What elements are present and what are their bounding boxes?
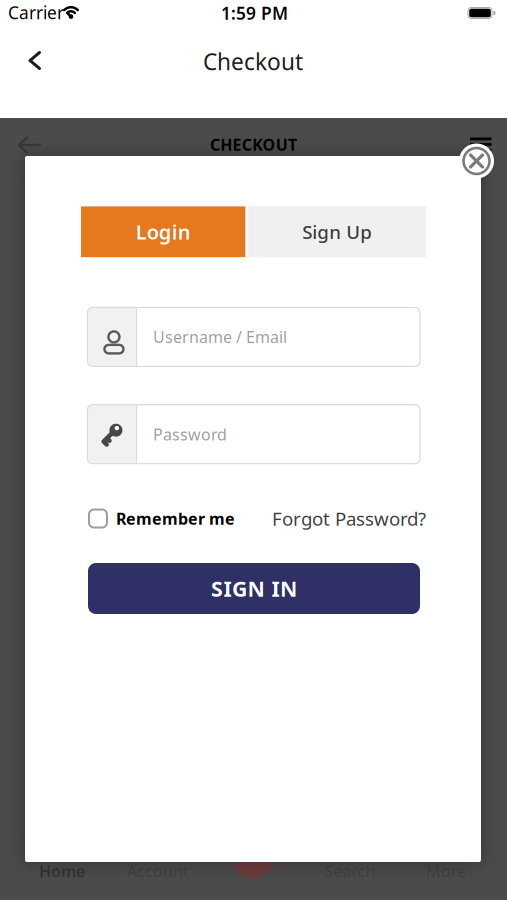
- staticText: Home: [39, 860, 85, 882]
- button[interactable]: Back: [18, 137, 41, 153]
- button[interactable]: Login: [81, 206, 245, 257]
- staticText: Remember me: [116, 508, 235, 529]
- staticText: Carrier: [8, 1, 64, 24]
- staticText: 1:59 PM: [221, 1, 288, 24]
- staticText: Search: [324, 860, 375, 882]
- button[interactable]: Cart: [231, 834, 275, 878]
- button[interactable]: Password: [87, 405, 420, 464]
- staticText: Login: [136, 218, 191, 245]
- button[interactable]: Remember me: [89, 508, 235, 529]
- staticText: Account: [127, 860, 189, 882]
- staticText: More: [426, 860, 466, 882]
- staticText: SIGN IN: [211, 574, 297, 603]
- staticText: CHECKOUT: [210, 134, 297, 155]
- staticText: Sign Up: [302, 219, 372, 244]
- staticText: Forgot Password?: [272, 506, 426, 531]
- button[interactable]: Menu: [470, 137, 491, 151]
- button[interactable]: Search: [324, 860, 375, 882]
- staticText: Username / Email: [153, 326, 287, 347]
- button[interactable]: Forgot Password?: [272, 506, 426, 531]
- button[interactable]: Back: [15, 40, 55, 80]
- button[interactable]: Close: [459, 143, 494, 178]
- staticText: Password: [153, 424, 227, 445]
- button[interactable]: SIGN IN: [88, 563, 420, 614]
- button[interactable]: Home: [39, 860, 85, 882]
- staticText: Checkout: [203, 46, 303, 76]
- button[interactable]: Username / Email: [87, 307, 420, 366]
- button[interactable]: More: [426, 860, 466, 882]
- button[interactable]: Account: [127, 860, 189, 882]
- button[interactable]: Sign Up: [248, 206, 426, 257]
